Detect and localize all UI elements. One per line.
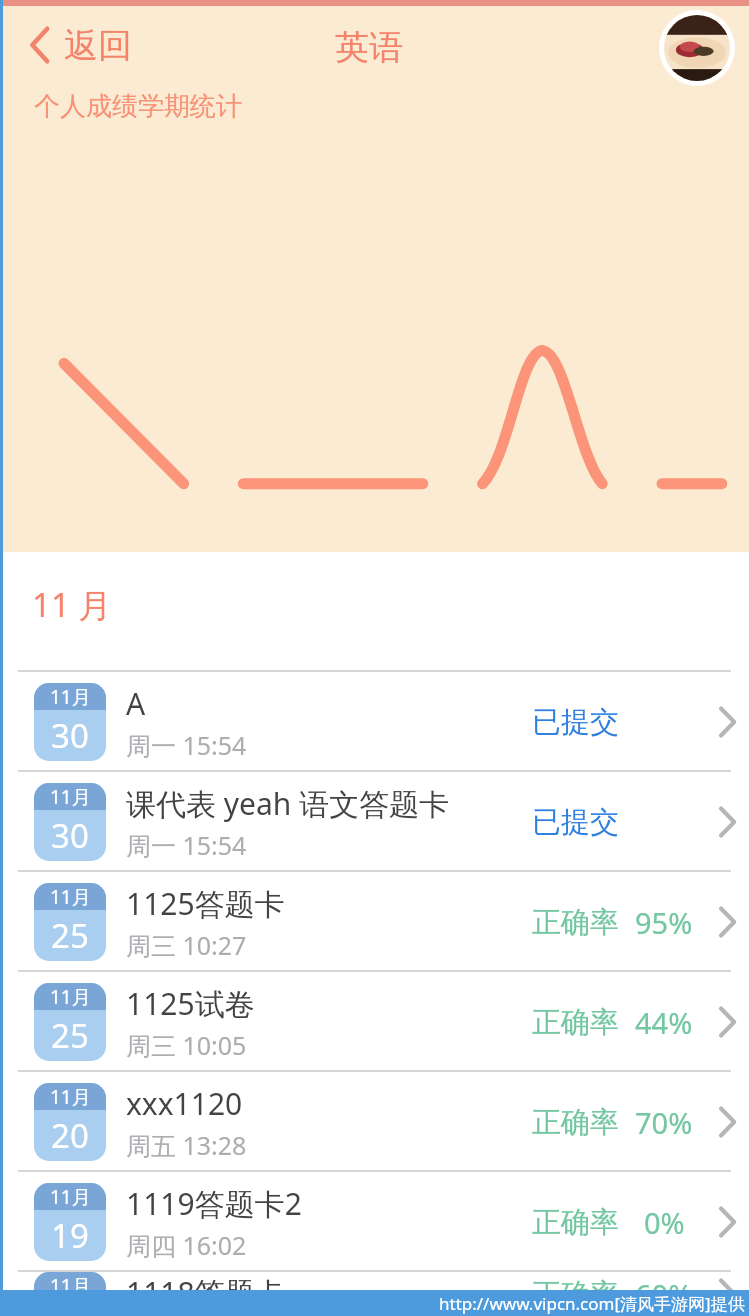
staticText: 正确率 xyxy=(532,1104,619,1141)
staticText: 0% xyxy=(644,1203,685,1242)
staticText: 返回 xyxy=(64,24,132,67)
staticText: 11月 xyxy=(50,1273,91,1299)
staticText: 95% xyxy=(635,903,693,942)
staticText: 25 xyxy=(51,1013,89,1058)
staticText: 周四 16:02 xyxy=(126,1228,247,1262)
button[interactable]: 11月 xyxy=(0,1072,749,1172)
staticText: 周一 15:54 xyxy=(126,828,247,862)
staticText: 44% xyxy=(635,1003,693,1042)
staticText: 周五 13:28 xyxy=(126,1128,247,1162)
staticText: 1125试卷 xyxy=(126,983,255,1024)
staticText: 25 xyxy=(51,913,89,958)
staticText: 60% xyxy=(635,1275,693,1314)
staticText: 30 xyxy=(51,713,89,758)
staticText: 个人成绩学期统计 xyxy=(34,90,242,123)
button[interactable]: 返回 xyxy=(28,14,132,76)
staticText: 周三 10:05 xyxy=(126,1028,247,1062)
staticText: 周一 15:54 xyxy=(126,728,247,762)
staticText: 11月 xyxy=(50,684,91,710)
staticText: 正确率 xyxy=(532,1004,619,1041)
staticText: 正确率 xyxy=(532,1204,619,1241)
staticText: 正确率 xyxy=(532,904,619,941)
staticText: xxx1120 xyxy=(126,1083,243,1124)
staticText: 已提交 xyxy=(532,704,619,741)
staticText: 11月 xyxy=(50,1084,91,1110)
staticText: 英语 xyxy=(335,26,403,69)
staticText: 周三 10:27 xyxy=(126,928,247,962)
button[interactable]: Profile avatar xyxy=(659,10,735,86)
staticText: 1118答题卡 xyxy=(126,1272,285,1313)
button[interactable]: 11月 xyxy=(0,672,749,772)
staticText: 正确率 xyxy=(532,1276,619,1313)
staticText: 课代表 yeah 语文答题卡 xyxy=(126,783,450,824)
staticText: 1119答题卡2 xyxy=(126,1183,302,1224)
staticText: A xyxy=(126,683,146,724)
staticText: 11月 xyxy=(50,1184,91,1210)
staticText: 11月 xyxy=(50,984,91,1010)
button[interactable]: 11月 xyxy=(0,772,749,872)
staticText: 19 xyxy=(51,1213,89,1258)
staticText: 30 xyxy=(51,813,89,858)
staticText: http://www.vipcn.com[清风手游网]提供 xyxy=(439,1292,745,1315)
staticText: 20 xyxy=(51,1113,89,1158)
staticText: 11月 xyxy=(50,884,91,910)
staticText: 11月 xyxy=(50,784,91,810)
button[interactable]: 11月 xyxy=(0,1172,749,1272)
staticText: 1125答题卡 xyxy=(126,883,285,924)
staticText: 70% xyxy=(635,1103,693,1142)
button[interactable]: 11月 xyxy=(0,1272,749,1316)
staticText: 11 月 xyxy=(32,582,112,627)
staticText: 已提交 xyxy=(532,804,619,841)
button[interactable]: 11月 xyxy=(0,872,749,972)
button[interactable]: 11月 xyxy=(0,972,749,1072)
